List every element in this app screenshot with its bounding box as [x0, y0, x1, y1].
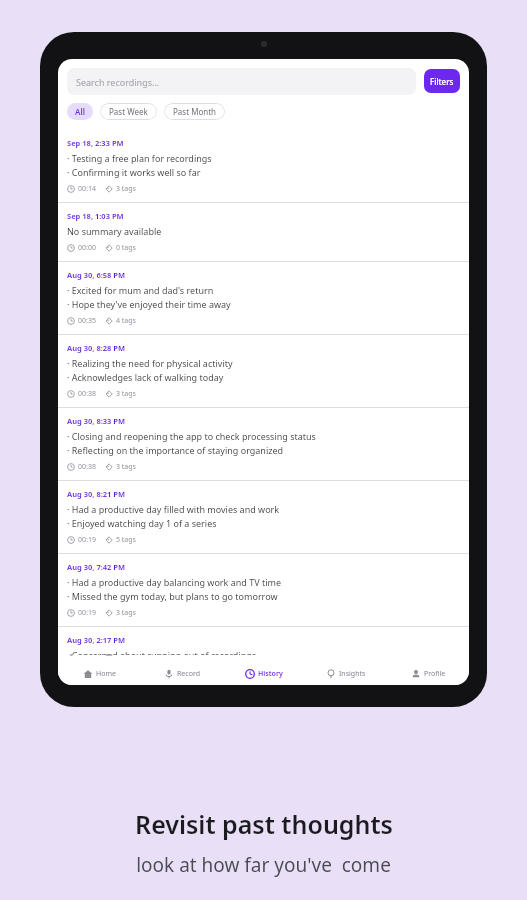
staticText: 00:38: [78, 462, 96, 472]
staticText: 4 tags: [116, 316, 136, 326]
button[interactable]: Past Month: [164, 103, 225, 120]
button[interactable]: Aug 30, 7:42 PM: [58, 554, 469, 626]
button[interactable]: Aug 30, 8:21 PM: [58, 481, 469, 553]
staticText: 00:00: [78, 243, 96, 253]
staticText: 3 tags: [116, 389, 136, 399]
staticText: Aug 30, 2:17 PM: [67, 635, 126, 645]
button[interactable]: Sep 18, 2:33 PM: [58, 130, 469, 202]
staticText: 00:38: [78, 389, 96, 399]
button[interactable]: Filters: [424, 69, 460, 93]
staticText: · Had a productive day balancing work an…: [67, 576, 282, 588]
button[interactable]: Profile: [387, 663, 469, 685]
staticText: · Testing a free plan for recordings: [67, 152, 212, 164]
staticText: 00:19: [78, 608, 96, 618]
button[interactable]: Record: [141, 663, 223, 685]
button[interactable]: Aug 30, 8:33 PM: [58, 408, 469, 480]
button[interactable]: Home: [58, 663, 141, 685]
button[interactable]: Sep 18, 1:03 PM: [58, 203, 469, 261]
staticText: All: [75, 106, 85, 117]
staticText: Aug 30, 7:42 PM: [67, 562, 126, 572]
staticText: History: [258, 669, 283, 679]
button[interactable]: Aug 30, 6:58 PM: [58, 262, 469, 334]
staticText: Home: [96, 669, 116, 679]
staticText: Revisit past thoughts: [135, 807, 393, 841]
staticText: · Had a productive day filled with movie…: [67, 503, 280, 515]
staticText: Profile: [424, 669, 446, 679]
staticText: 00:35: [78, 316, 96, 326]
staticText: Insights: [339, 669, 366, 679]
staticText: · Missed the gym today, but plans to go …: [67, 590, 278, 602]
staticText: · Concerned about running out of recordi…: [67, 649, 257, 655]
button[interactable]: Search recordings...: [67, 68, 416, 95]
staticText: · Confirming it works well so far: [67, 166, 201, 178]
staticText: 00:19: [78, 535, 96, 545]
staticText: Aug 30, 8:21 PM: [67, 489, 126, 499]
staticText: Sep 18, 1:03 PM: [67, 211, 124, 221]
staticText: · Closing and reopening the app to check…: [67, 430, 316, 442]
staticText: 3 tags: [116, 462, 136, 472]
staticText: 3 tags: [116, 608, 136, 618]
staticText: Aug 30, 6:58 PM: [67, 270, 126, 280]
button[interactable]: Aug 30, 2:17 PM: [58, 627, 469, 663]
button[interactable]: Insights: [305, 663, 387, 685]
button[interactable]: Aug 30, 8:28 PM: [58, 335, 469, 407]
staticText: · Hope they've enjoyed their time away: [67, 298, 231, 310]
staticText: · Acknowledges lack of walking today: [67, 371, 224, 383]
staticText: Past Week: [109, 106, 148, 117]
staticText: · Excited for mum and dad's return: [67, 284, 214, 296]
staticText: · Reflecting on the importance of stayin…: [67, 444, 284, 456]
staticText: 3 tags: [116, 184, 136, 194]
staticText: Past Month: [173, 106, 216, 117]
button[interactable]: All: [67, 103, 93, 120]
button[interactable]: Past Week: [100, 103, 157, 120]
staticText: Search recordings...: [76, 76, 160, 88]
staticText: 00:14: [78, 184, 96, 194]
staticText: look at how far you've come: [136, 852, 391, 878]
staticText: 0 tags: [116, 243, 136, 253]
staticText: Aug 30, 8:33 PM: [67, 416, 126, 426]
staticText: No summary available: [67, 225, 162, 237]
staticText: Aug 30, 8:28 PM: [67, 343, 126, 353]
button[interactable]: History: [223, 663, 305, 685]
staticText: · Realizing the need for physical activi…: [67, 357, 233, 369]
staticText: Record: [177, 669, 200, 679]
staticText: 5 tags: [116, 535, 136, 545]
staticText: Sep 18, 2:33 PM: [67, 138, 124, 148]
staticText: · Enjoyed watching day 1 of a series: [67, 517, 217, 529]
staticText: Filters: [430, 76, 454, 87]
